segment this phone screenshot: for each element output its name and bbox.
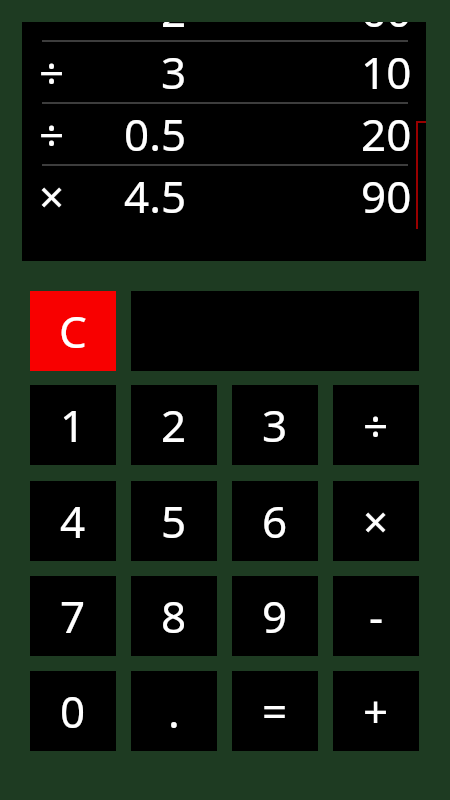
staticText: = (262, 681, 288, 741)
staticText: 10 (361, 42, 412, 102)
staticText: ÷ (39, 42, 65, 102)
button[interactable]: 2 (131, 385, 217, 465)
button[interactable]: 8 (131, 576, 217, 656)
staticText: - (369, 586, 384, 646)
staticText: ÷ (363, 395, 389, 455)
button[interactable]: = (232, 671, 318, 751)
staticText: 6 (262, 491, 288, 551)
staticText: 4.5 (124, 166, 187, 219)
staticText: 8 (161, 586, 187, 646)
button[interactable]: × (333, 481, 419, 561)
button[interactable]: + (333, 671, 419, 751)
button[interactable]: 5 (131, 481, 217, 561)
button[interactable]: ÷ (333, 385, 419, 465)
staticText: 0.5 (124, 104, 187, 164)
button[interactable]: 4 (30, 481, 116, 561)
staticText: . (168, 681, 180, 741)
button[interactable]: 9 (232, 576, 318, 656)
staticText: 1 (60, 395, 86, 455)
staticText: 9 (262, 586, 288, 646)
staticText: 60 (361, 22, 412, 40)
staticText: 90 (361, 166, 412, 219)
button[interactable]: 1 (30, 385, 116, 465)
staticText: 2 (161, 395, 187, 455)
button[interactable]: - (333, 576, 419, 656)
staticText: 2 (161, 22, 187, 40)
button[interactable]: 2 (22, 22, 426, 40)
staticText: ÷ (39, 104, 65, 164)
staticText: 20 (361, 104, 412, 164)
staticText: × (39, 166, 65, 219)
button[interactable]: C (30, 291, 116, 371)
staticText: 0 (60, 681, 86, 741)
button[interactable]: 0 (30, 671, 116, 751)
button[interactable]: 6 (232, 481, 318, 561)
button[interactable]: × (22, 166, 426, 219)
button[interactable]: ÷ (22, 42, 426, 102)
staticText: 3 (262, 395, 288, 455)
staticText: × (363, 491, 389, 551)
staticText: + (363, 681, 389, 741)
staticText: 3 (161, 42, 187, 102)
staticText: 7 (60, 586, 86, 646)
button[interactable]: . (131, 671, 217, 751)
staticText: 4 (60, 491, 86, 551)
button[interactable]: 3 (232, 385, 318, 465)
staticText: C (59, 301, 87, 361)
staticText: 5 (161, 491, 187, 551)
button[interactable]: ÷ (22, 104, 426, 164)
button[interactable]: 7 (30, 576, 116, 656)
